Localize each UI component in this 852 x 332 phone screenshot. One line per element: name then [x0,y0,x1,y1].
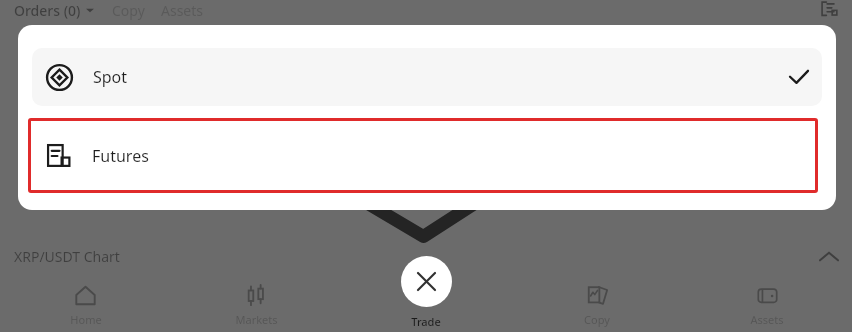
staticText: Home [70,312,102,327]
staticText: Futures [92,145,149,167]
staticText: Spot [93,66,128,88]
button[interactable]: Assets [682,270,852,332]
button[interactable]: Home [0,270,171,332]
staticText: Orders (0) [14,1,81,20]
staticText: Copy [584,312,610,327]
staticText: Markets [235,312,278,327]
button[interactable]: Copy [512,270,682,332]
button[interactable]: Close [401,256,452,307]
button[interactable]: Markets [171,270,342,332]
staticText: Trade [411,314,441,329]
button[interactable]: XRP/USDT Chart [0,244,852,268]
staticText: Copy [112,1,145,20]
staticText: Assets [161,1,204,20]
button[interactable]: Futures [28,118,818,193]
button[interactable]: Order list [818,0,842,22]
staticText: Assets [750,312,784,327]
staticText: XRP/USDT Chart [14,247,120,266]
button[interactable]: Spot [32,48,822,106]
